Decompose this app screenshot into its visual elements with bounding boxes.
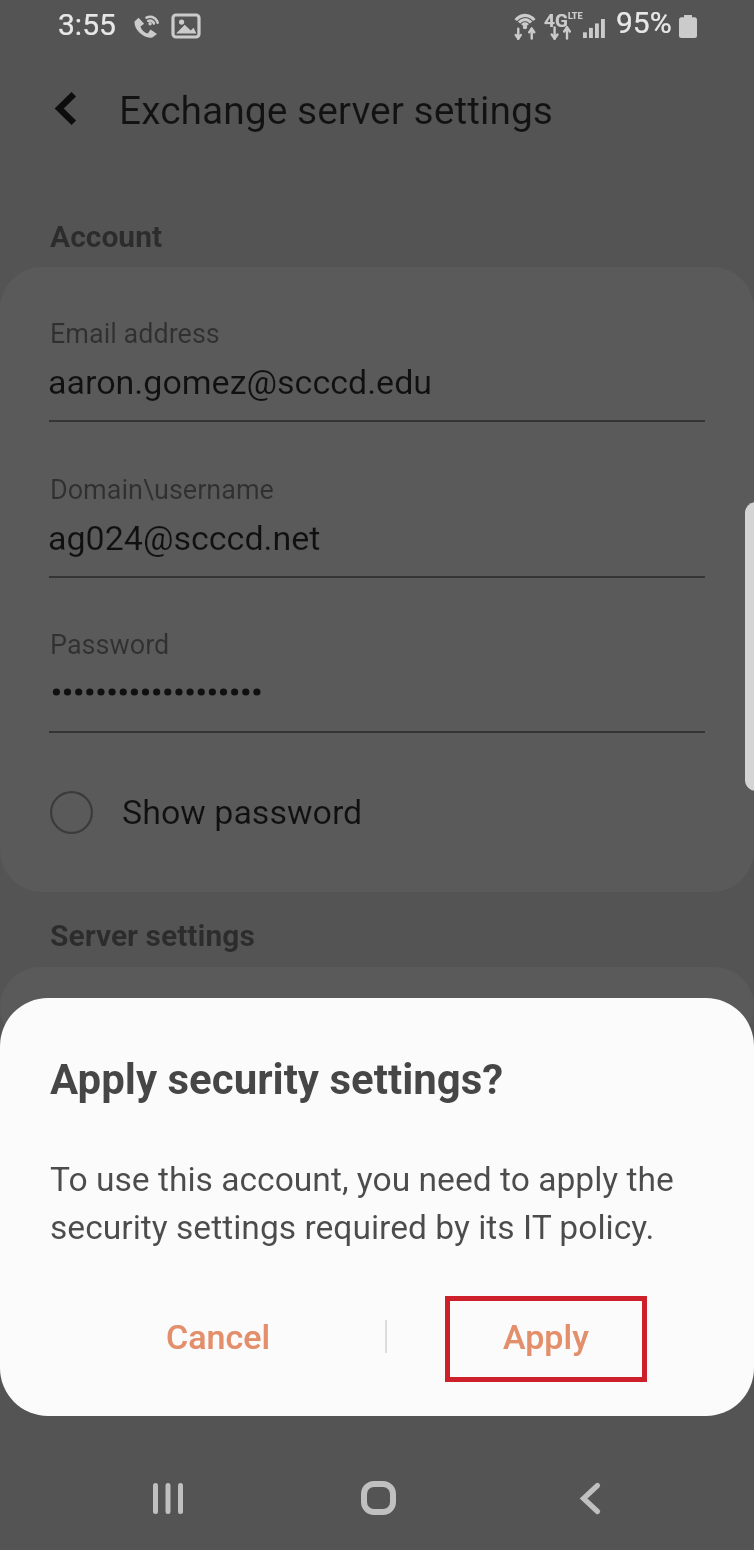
staticText: 4G xyxy=(544,9,568,31)
staticText: To use this account, you need to apply t… xyxy=(50,1160,674,1247)
staticText: Password xyxy=(50,629,170,661)
staticText: Account xyxy=(50,219,163,254)
staticText: Cancel xyxy=(166,1317,271,1357)
button[interactable]: Apply xyxy=(382,1292,709,1382)
staticText: aaron.gomez@scccd.edu xyxy=(48,362,433,402)
staticText: Exchange server settings xyxy=(119,88,553,134)
button[interactable]: Navigate up xyxy=(40,82,92,134)
staticText: Server settings xyxy=(50,918,255,953)
staticText: Apply xyxy=(503,1317,589,1357)
button[interactable]: Home xyxy=(323,1443,433,1550)
button[interactable]: Recent apps xyxy=(113,1443,223,1550)
staticText: 3:55 xyxy=(58,7,116,42)
button[interactable]: Cancel xyxy=(55,1292,382,1382)
button[interactable]: Show password xyxy=(0,776,754,848)
button[interactable]: Back xyxy=(535,1443,645,1550)
staticText: Domain\username xyxy=(50,474,274,506)
staticText: Email address xyxy=(50,318,220,350)
staticText: Apply security settings? xyxy=(50,1055,504,1104)
staticText: 95% xyxy=(616,5,672,40)
staticText: ag024@scccd.net xyxy=(48,518,321,558)
staticText: Show password xyxy=(122,792,363,832)
staticText: LTE xyxy=(568,11,583,22)
